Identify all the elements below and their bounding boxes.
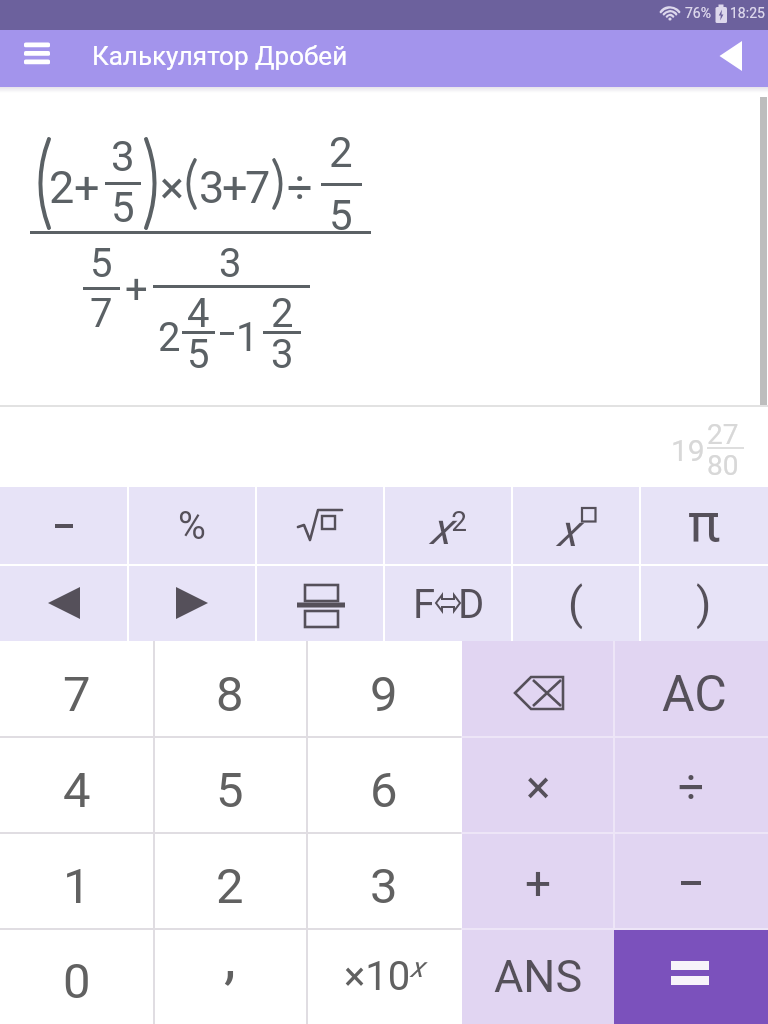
button[interactable] [256,564,384,641]
staticText: 80 [707,449,739,482]
staticText: 2 [49,161,75,214]
button[interactable] [0,641,154,737]
staticText: 1 [236,314,259,361]
staticText: Калькулятор Дробей [92,41,348,71]
staticText: 4 [63,762,91,819]
staticText: ÷ [287,161,313,214]
staticText: 7 [63,666,91,723]
staticText: 6 [370,762,398,819]
button[interactable] [0,487,128,564]
staticText: 5 [111,183,135,232]
button[interactable] [154,929,308,1024]
button[interactable] [708,31,752,75]
button[interactable] [384,564,512,641]
staticText: + [525,856,552,910]
staticText: 3 [199,161,225,214]
staticText: 1 [63,858,91,915]
button[interactable] [461,929,615,1024]
button[interactable] [0,929,154,1024]
staticText: 2 [158,314,181,361]
button[interactable] [307,737,461,833]
staticText: 5 [329,191,353,240]
staticText: 7 [245,161,271,214]
button[interactable] [22,40,52,70]
staticText: 18:25 [730,5,765,21]
staticText: ×10x [344,951,424,1000]
button[interactable] [154,833,308,929]
button[interactable] [512,564,640,641]
staticText: 2 [329,128,353,177]
button[interactable] [614,737,768,833]
staticText: π [688,491,721,554]
staticText: 0 [63,953,91,1010]
button[interactable] [256,487,384,564]
staticText: ANS [494,950,583,1003]
staticText: 3 [370,858,398,915]
button[interactable] [461,737,615,833]
staticText: ÷ [678,760,705,814]
button[interactable] [0,833,154,929]
staticText: 4 [187,290,210,337]
staticText: 3 [219,240,242,287]
staticText: 5 [90,240,113,287]
button[interactable] [614,929,768,1024]
button[interactable] [614,641,768,737]
staticText: ) [696,578,712,630]
button[interactable] [640,564,768,641]
staticText: × [160,161,185,214]
button[interactable] [512,487,640,564]
button[interactable] [640,487,768,564]
staticText: 3 [271,331,294,378]
staticText: x [557,505,579,557]
button[interactable] [307,641,461,737]
button[interactable] [154,737,308,833]
button[interactable] [461,641,615,737]
button[interactable] [461,833,615,929]
staticText: D [458,581,485,628]
staticText: 5 [187,331,210,378]
staticText: % [178,504,206,549]
button[interactable] [0,564,128,641]
staticText: 8 [216,666,244,723]
staticText: x2 [430,503,467,555]
staticText: 5 [216,762,244,819]
button[interactable] [128,487,256,564]
staticText: 9 [370,666,398,723]
staticText: + [222,161,248,214]
staticText: 27 [707,418,739,451]
button[interactable] [0,737,154,833]
staticText: 2 [216,858,244,915]
staticText: 76% [685,5,711,21]
staticText: 3 [111,132,135,181]
button[interactable] [384,487,512,564]
button[interactable] [128,564,256,641]
button[interactable] [307,833,461,929]
staticText: + [125,266,148,313]
staticText: AC [662,665,727,724]
staticText: , [224,921,236,991]
button[interactable] [614,833,768,929]
staticText: 19 [671,433,705,468]
button[interactable] [154,641,308,737]
staticText: × [526,760,551,814]
staticText: ( [568,578,584,630]
button[interactable] [307,929,461,1024]
staticText: + [74,161,100,214]
staticText: 2 [271,290,294,337]
staticText: 7 [90,290,113,337]
staticText: F [413,581,436,628]
